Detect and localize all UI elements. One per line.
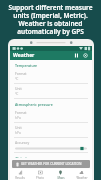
button[interactable]: Weather xyxy=(71,169,92,180)
staticText: Results xyxy=(15,176,25,179)
button[interactable]: Unit xyxy=(10,123,92,137)
staticText: °C xyxy=(15,92,19,96)
staticText: Weather xyxy=(76,176,88,179)
button[interactable]: Units xyxy=(73,52,80,59)
staticText: Atmospheric pressure xyxy=(15,102,53,107)
staticText: Weather xyxy=(13,52,35,59)
button[interactable]: Maps xyxy=(50,169,71,180)
button[interactable]: Unit xyxy=(10,84,92,98)
staticText: Unit xyxy=(15,86,22,91)
staticText: Unit xyxy=(15,125,22,130)
staticText: Temperature xyxy=(15,63,38,68)
staticText: hPa xyxy=(15,116,21,120)
staticText: Photo xyxy=(36,176,44,179)
staticText: Format xyxy=(15,110,27,115)
staticText: Format xyxy=(15,71,27,76)
staticText: °C xyxy=(15,77,19,81)
button[interactable]: GET WEATHER FOR CURRENT LOCATION xyxy=(12,160,90,168)
staticText: Accuracy xyxy=(15,140,30,145)
button[interactable]: Format xyxy=(10,69,92,83)
staticText: Maps xyxy=(57,176,65,179)
staticText: hPa xyxy=(15,131,21,135)
button[interactable]: Accuracy xyxy=(10,138,92,152)
button[interactable]: Settings xyxy=(82,52,89,59)
button[interactable]: Results xyxy=(10,169,30,180)
button[interactable]: Photo xyxy=(30,169,50,180)
staticText: Support different measure units (Imperia… xyxy=(4,3,97,36)
staticText: GET WEATHER FOR CURRENT LOCATION xyxy=(21,162,82,166)
staticText: Altitude xyxy=(15,156,29,158)
button[interactable]: Format xyxy=(10,108,92,122)
